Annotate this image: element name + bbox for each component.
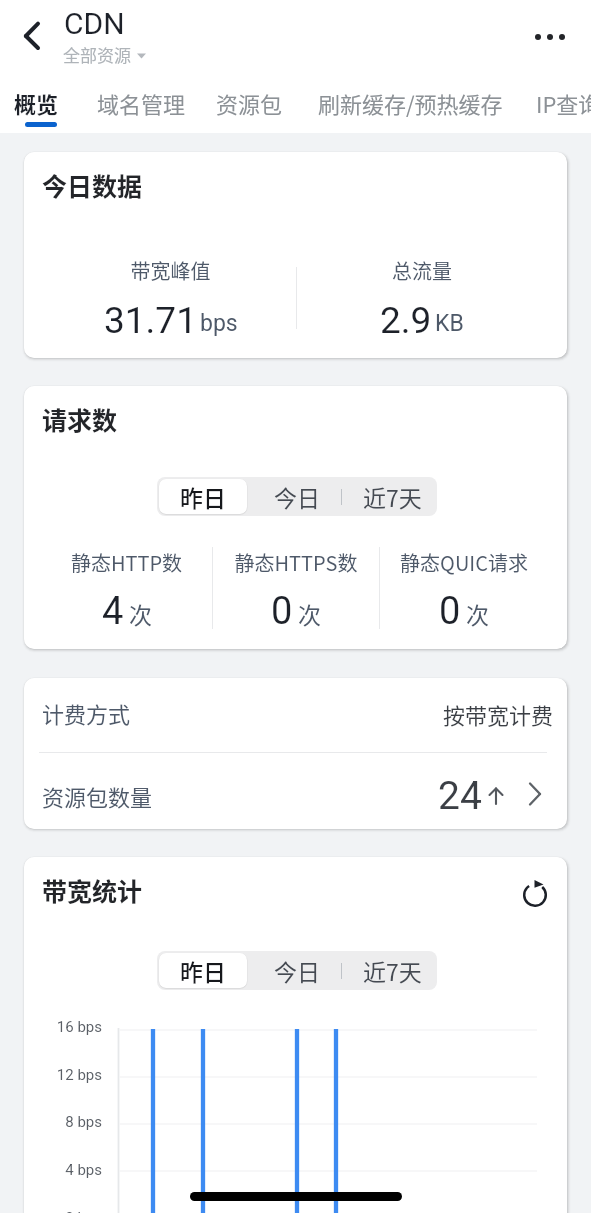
button[interactable]: Back [8, 14, 56, 62]
staticText: 静态HTTP数 [24, 548, 229, 577]
staticText: 资源包数量 [42, 780, 153, 812]
staticText: 4 [102, 589, 124, 634]
staticText: 0 [271, 589, 293, 634]
staticText: 带宽峰值 [34, 256, 307, 285]
staticText: 请求数 [42, 401, 118, 437]
staticText: 12 bps [24, 1066, 102, 1084]
staticText: bps [200, 310, 238, 337]
staticText: 今日数据 [42, 167, 143, 203]
staticText: 4 bps [24, 1161, 102, 1179]
staticText: 今日 [274, 954, 320, 987]
staticText: 31.71 [104, 299, 197, 342]
staticText: 0 bps [24, 1209, 102, 1213]
staticText: 昨日 [180, 480, 226, 513]
button[interactable]: 今日 [249, 951, 345, 990]
staticText: 次 [129, 597, 152, 630]
staticText: 按带宽计费 [443, 698, 554, 730]
staticText: 16 bps [24, 1018, 102, 1036]
staticText: 昨日 [180, 954, 226, 987]
staticText: 次 [298, 597, 321, 630]
button[interactable]: More options [525, 14, 575, 60]
staticText: 带宽统计 [42, 872, 143, 908]
staticText: 总流量 [287, 256, 557, 285]
button[interactable]: 昨日 [159, 479, 247, 514]
staticText: 24 [438, 773, 482, 819]
button[interactable]: 概览 [14, 78, 59, 132]
button[interactable]: 今日 [249, 477, 345, 516]
button[interactable]: IP查询 [536, 78, 591, 132]
staticText: IP查询 [536, 87, 591, 119]
staticText: 域名管理 [97, 87, 186, 119]
button[interactable]: 域名管理 [97, 78, 186, 132]
button[interactable]: 昨日 [159, 953, 247, 988]
staticText: KB [435, 310, 464, 337]
button[interactable]: Refresh [513, 870, 557, 914]
button[interactable]: 近7天 [347, 477, 437, 516]
staticText: 计费方式 [42, 697, 131, 729]
staticText: 静态HTTPS数 [212, 548, 380, 577]
button[interactable]: 计费方式 [24, 678, 567, 753]
button[interactable]: 资源包 [216, 78, 283, 132]
button[interactable]: 资源包数量 [24, 753, 567, 829]
staticText: 8 bps [24, 1113, 102, 1131]
staticText: 次 [466, 597, 489, 630]
staticText: 2.9 [380, 299, 432, 342]
staticText: 资源包 [216, 87, 283, 119]
staticText: 概览 [14, 87, 59, 119]
staticText: 近7天 [363, 954, 422, 987]
staticText: 静态QUIC请求 [380, 548, 548, 577]
staticText: 全部资源 [63, 42, 131, 67]
staticText: 今日 [274, 480, 320, 513]
staticText: CDN [64, 6, 125, 41]
button[interactable]: 近7天 [347, 951, 437, 990]
staticText: 刷新缓存/预热缓存 [318, 87, 503, 119]
button[interactable]: 刷新缓存/预热缓存 [318, 78, 503, 132]
staticText: 近7天 [363, 480, 422, 513]
staticText: 0 [439, 589, 461, 634]
